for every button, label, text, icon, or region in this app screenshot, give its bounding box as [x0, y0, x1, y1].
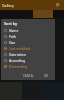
staticText: Gallery — [2, 3, 14, 8]
staticText: Last modified — [9, 46, 31, 50]
staticText: Size — [9, 40, 16, 44]
button[interactable]: Date taken — [1, 51, 55, 57]
staticText: OK — [44, 74, 49, 78]
button[interactable]: Ascending — [1, 57, 55, 63]
button[interactable]: Name — [1, 27, 55, 33]
staticText: Name — [9, 28, 19, 32]
button[interactable]: CANCEL — [21, 73, 36, 79]
button[interactable]: Path — [1, 33, 55, 39]
staticText: Sort by — [4, 21, 18, 26]
staticText: Descending — [9, 64, 28, 68]
staticText: Date taken — [9, 52, 26, 56]
button[interactable]: Descending — [1, 63, 55, 69]
button[interactable]: OK — [42, 73, 51, 79]
button[interactable]: Last modified — [1, 45, 55, 51]
button[interactable]: Size — [1, 39, 55, 45]
button[interactable]: Search — [55, 2, 61, 8]
staticText: Path — [9, 34, 17, 38]
staticText: CANCEL — [23, 74, 34, 78]
staticText: Ascending — [9, 58, 26, 62]
